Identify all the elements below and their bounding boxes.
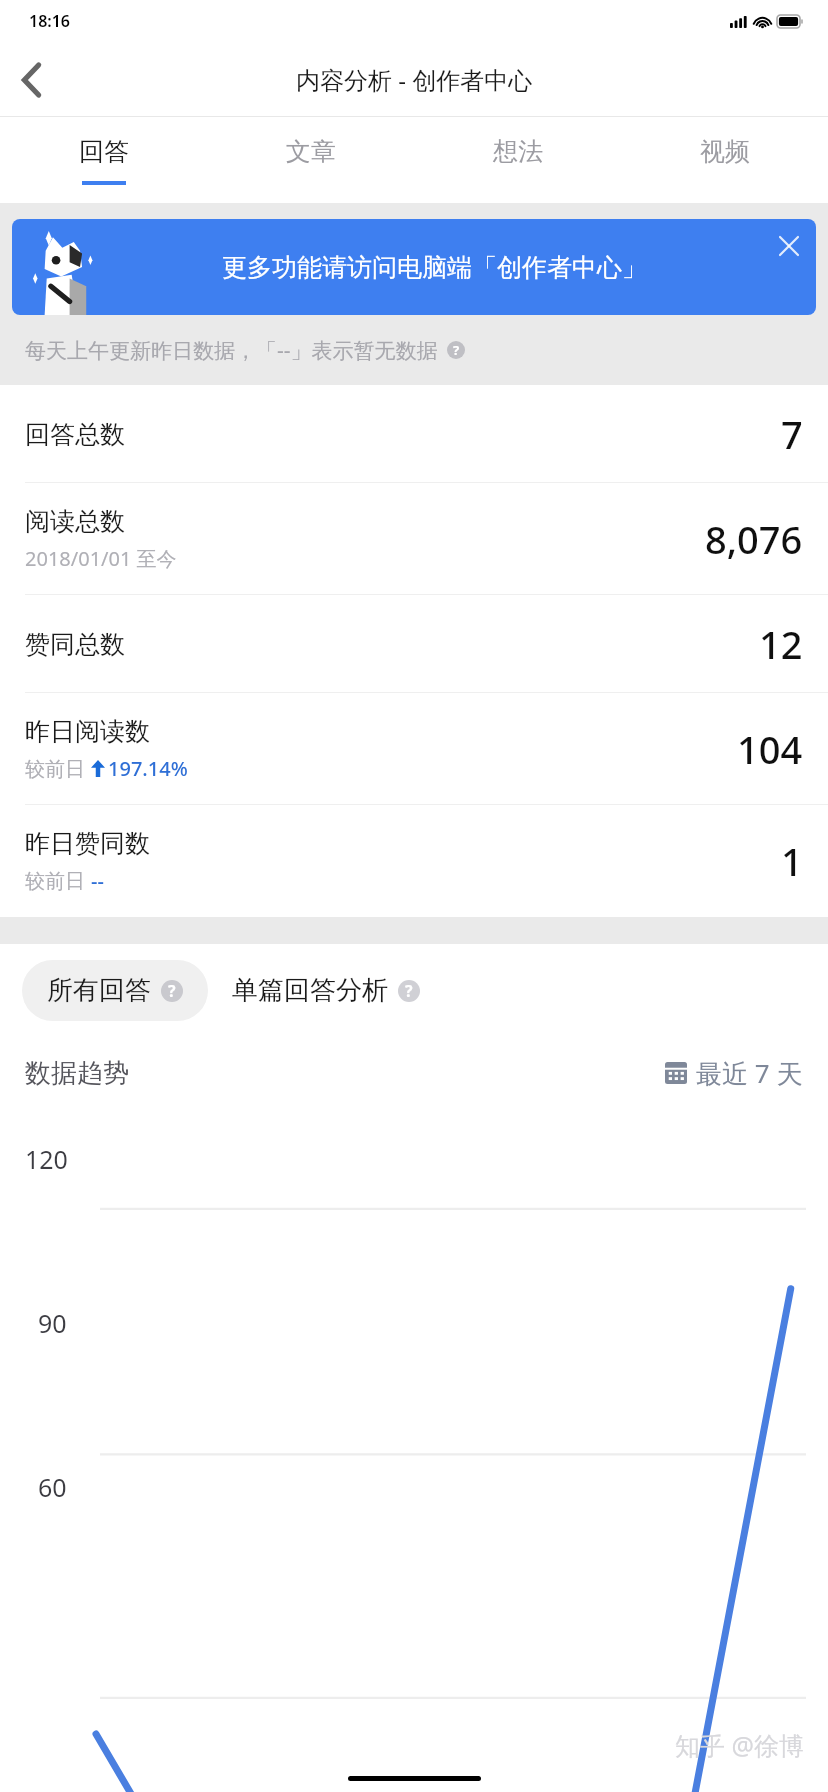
button[interactable]: 最近 7 天 [665,1055,803,1091]
staticText: -- [91,867,104,894]
button[interactable]: 视频 [621,117,828,203]
button[interactable]: 想法 [414,117,621,203]
staticText: 阅读总数 [25,506,125,537]
button[interactable]: 所有回答 [22,960,208,1021]
staticText: ? [168,980,176,1002]
staticText: 知乎 @徐博 [675,1728,804,1762]
staticText: 文章 [286,136,336,167]
button[interactable]: 文章 [207,117,414,203]
button[interactable]: 赞同总数 [0,595,828,693]
button[interactable]: Close [762,219,816,273]
button[interactable]: 单篇回答分析 [224,960,428,1021]
button[interactable]: 回答 [0,117,207,203]
staticText: 18:16 [29,10,71,32]
staticText: 昨日赞同数 [25,828,150,859]
staticText: 90 [38,1306,67,1340]
button[interactable]: 回答总数 [0,385,828,483]
button[interactable]: 更多功能请访问电脑端「创作者中心」 [12,219,816,315]
staticText: 最近 7 天 [696,1055,803,1091]
staticText: 104 [737,723,803,775]
staticText: 更多功能请访问电脑端「创作者中心」 [222,252,647,283]
staticText: 2018/01/01 至今 [25,545,177,572]
button[interactable]: 昨日阅读数 [0,693,828,805]
staticText: 赞同总数 [25,629,125,660]
staticText: 12 [759,618,803,670]
staticText: 60 [38,1470,67,1504]
staticText: 8,076 [705,513,803,565]
staticText: 视频 [700,136,750,167]
staticText: 回答总数 [25,419,125,450]
staticText: 较前日 [25,867,91,894]
staticText: 想法 [493,136,543,167]
staticText: 单篇回答分析 [232,974,388,1007]
staticText: 内容分析 - 创作者中心 [296,63,533,96]
staticText: 7 [781,408,803,460]
staticText: 昨日阅读数 [25,716,150,747]
staticText: 1 [781,835,803,887]
staticText: 较前日 [25,755,91,782]
staticText: 回答 [79,136,129,167]
staticText: 每天上午更新昨日数据，「--」表示暂无数据 [25,336,438,365]
button[interactable]: Back [0,49,62,111]
staticText: 所有回答 [47,974,151,1007]
staticText: 120 [25,1142,68,1176]
staticText: 数据趋势 [25,1057,129,1090]
button[interactable]: 阅读总数 [0,483,828,595]
staticText: ? [453,341,460,359]
button[interactable]: 昨日赞同数 [0,805,828,917]
staticText: 197.14% [108,755,188,782]
staticText: ? [405,980,413,1002]
